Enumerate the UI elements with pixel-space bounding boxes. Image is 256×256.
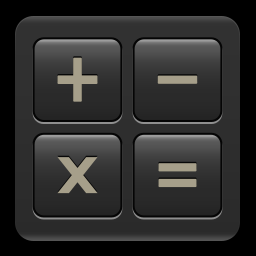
button[interactable]: Subtract xyxy=(133,37,222,122)
button[interactable]: Multiply xyxy=(33,133,122,217)
button[interactable]: Add xyxy=(33,37,122,122)
button[interactable]: Equals xyxy=(133,133,222,217)
